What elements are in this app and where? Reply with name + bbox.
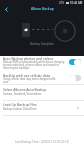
button[interactable]: Look Up Backup Files	[0, 100, 84, 116]
staticText: screen under lock, photos videos and tra…	[3, 63, 59, 66]
button[interactable]: BackUp with use cellular data	[0, 70, 84, 86]
staticText: Last Backup Time : 2018-01-15 07:21:18	[15, 140, 69, 144]
staticText: Backup WIFI or automatically while devic…	[3, 60, 65, 63]
button[interactable]: Auto Backup photos and videos	[0, 56, 84, 83]
button[interactable]: Switch on	[69, 58, 81, 66]
staticText: 47%	[59, 1, 65, 5]
staticText: Album Backup	[31, 6, 54, 10]
staticText: BackUp with use cellular data	[3, 73, 50, 78]
other: Open	[74, 104, 81, 111]
staticText: Backup location Cloud Drive	[3, 107, 37, 110]
staticText: them to your backups.	[3, 66, 30, 69]
staticText: 10:44 AM	[70, 1, 83, 5]
staticText: Look Up Backup Files	[3, 102, 37, 107]
staticText: Camera, Facebook, Screenshots	[3, 92, 41, 95]
button[interactable]: Back	[1, 4, 12, 15]
button[interactable]: Switch off	[69, 74, 81, 82]
staticText: Using cellular data may extra charges tr…	[3, 77, 56, 80]
staticText: Auto Backup photos and videos	[3, 56, 54, 61]
staticText: Select Albums Auto Backup	[3, 87, 47, 92]
staticText: cost.	[3, 80, 9, 83]
staticText: Backup Complete	[30, 42, 54, 46]
button[interactable]: Select Albums Auto Backup	[0, 85, 84, 101]
